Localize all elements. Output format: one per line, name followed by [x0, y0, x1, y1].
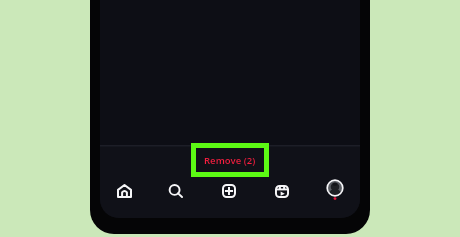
- button[interactable]: Home: [98, 175, 150, 207]
- button[interactable]: Search: [150, 175, 202, 207]
- button[interactable]: Reels: [256, 175, 308, 207]
- button[interactable]: Create new post: [203, 175, 255, 207]
- button[interactable]: Remove (2): [191, 143, 269, 177]
- button[interactable]: Profile: [309, 175, 361, 207]
- staticText: Remove (2): [204, 154, 256, 167]
